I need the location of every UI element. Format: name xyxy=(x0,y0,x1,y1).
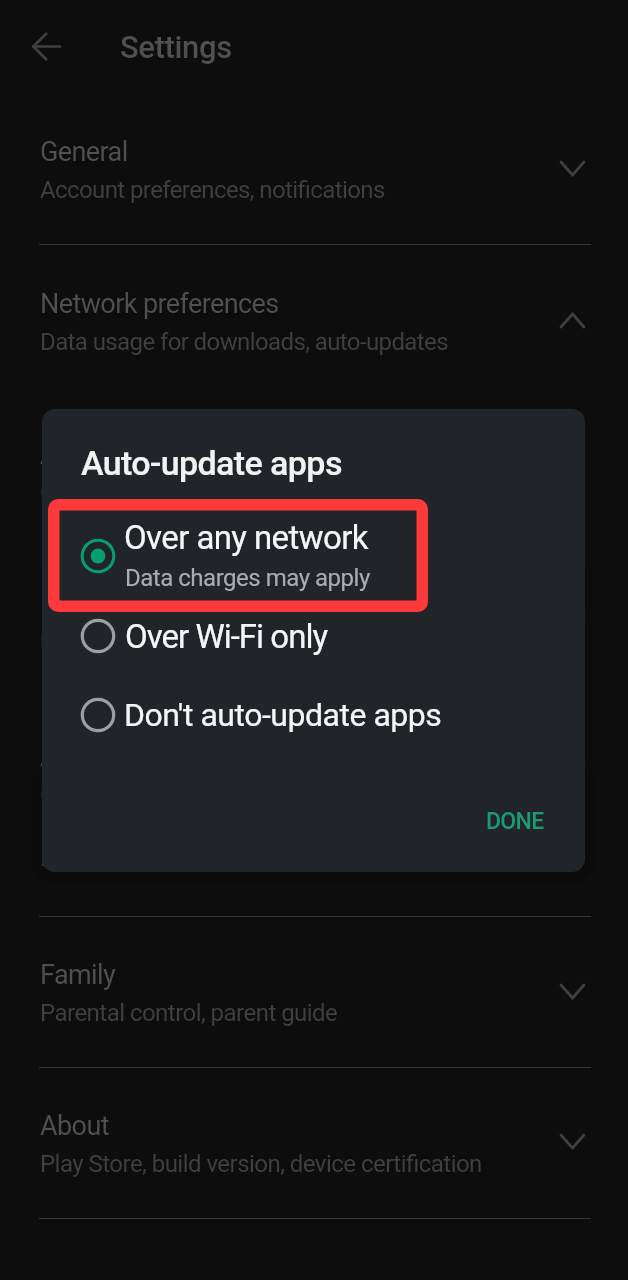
staticText: About xyxy=(40,1110,109,1142)
staticText: Purchases xyxy=(40,804,162,836)
staticText: Auto-update apps xyxy=(81,443,342,483)
staticText: Require authentication xyxy=(40,844,267,872)
staticText: Settings xyxy=(120,29,232,65)
button[interactable] xyxy=(0,93,628,244)
button[interactable] xyxy=(466,798,562,848)
staticText: Network preferences xyxy=(40,288,279,320)
staticText: Over Wi-Fi only xyxy=(125,617,328,656)
button[interactable] xyxy=(48,612,535,682)
button[interactable] xyxy=(0,916,628,1067)
staticText: Over any network xyxy=(40,781,215,809)
staticText: Don't auto-update apps xyxy=(124,696,442,734)
staticText: Family xyxy=(40,959,116,991)
staticText: Notifications xyxy=(40,590,187,622)
button[interactable] xyxy=(0,1067,628,1218)
button[interactable] xyxy=(0,396,628,547)
staticText: Auto-update apps xyxy=(40,439,244,471)
staticText: General xyxy=(40,136,128,168)
staticText: Parental control, parent guide xyxy=(40,999,338,1027)
button[interactable]: Back xyxy=(25,25,68,68)
staticText: Over any network xyxy=(124,518,368,557)
staticText: Over any network xyxy=(40,479,215,507)
button[interactable] xyxy=(0,245,628,396)
staticText: Data charges may apply xyxy=(125,564,370,592)
staticText: Updates available, offers xyxy=(40,630,288,658)
staticText: Data usage for downloads, auto-updates xyxy=(40,328,448,356)
button[interactable] xyxy=(0,698,628,849)
button[interactable] xyxy=(48,690,535,760)
button[interactable] xyxy=(48,499,428,612)
staticText: Account preferences, notifications xyxy=(40,176,385,204)
staticText: DONE xyxy=(486,808,544,835)
staticText: Play Store, build version, device certif… xyxy=(40,1150,482,1178)
button[interactable] xyxy=(0,547,628,698)
